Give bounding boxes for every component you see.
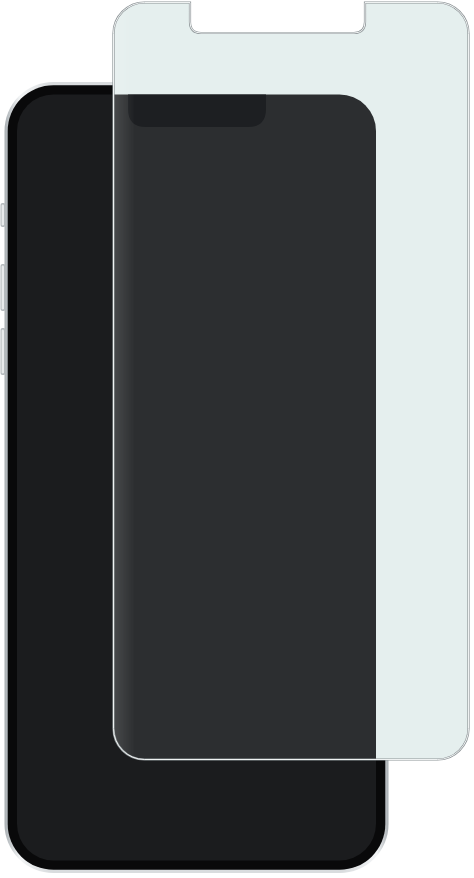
button[interactable]: iPhone with tempered glass screen protec… [0, 0, 474, 878]
